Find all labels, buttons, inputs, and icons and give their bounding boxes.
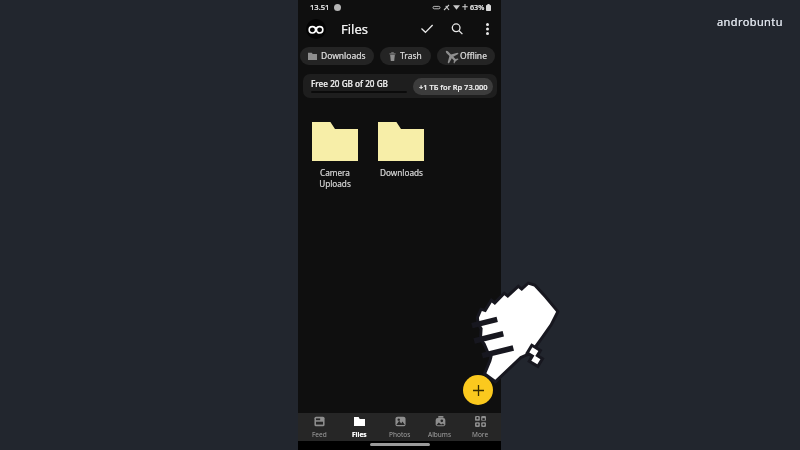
staticText: Trash (400, 50, 422, 62)
staticText: +1 TБ for Rp 73.000 (419, 82, 488, 92)
button[interactable]: Downloads (368, 122, 434, 178)
staticText: Files (352, 430, 367, 439)
button[interactable]: Files (340, 413, 378, 441)
button[interactable]: Free 20 GB of 20 GB (303, 74, 497, 98)
button[interactable]: Trash (380, 47, 431, 65)
staticText: Files (341, 20, 369, 38)
staticText: Downloads (380, 167, 423, 178)
button[interactable]: Search (446, 18, 468, 40)
staticText: Offline (460, 50, 487, 62)
staticText: Feed (312, 430, 327, 439)
staticText: Photos (389, 430, 411, 439)
button[interactable]: Offline (437, 47, 495, 65)
button[interactable]: Albums (421, 413, 459, 441)
button[interactable]: +1 TБ for Rp 73.000 (413, 78, 493, 95)
button[interactable]: Camera Uploads (302, 122, 368, 189)
button[interactable]: More options (476, 18, 498, 40)
staticText: Camera Uploads (319, 167, 351, 189)
button[interactable]: Downloads (300, 47, 374, 65)
staticText: 63% (470, 2, 485, 12)
staticText: Free 20 GB of 20 GB (311, 78, 388, 89)
button[interactable]: Photos (381, 413, 419, 441)
staticText: Downloads (321, 50, 366, 62)
staticText: Albums (428, 430, 452, 439)
staticText: More (472, 430, 489, 439)
staticText: androbuntu (717, 14, 783, 29)
button[interactable]: Add (463, 375, 493, 405)
button[interactable]: Feed (300, 413, 338, 441)
button[interactable]: Select (416, 18, 438, 40)
button[interactable]: Account (306, 19, 326, 39)
button[interactable]: More (461, 413, 499, 441)
staticText: 13.51 (310, 2, 330, 12)
